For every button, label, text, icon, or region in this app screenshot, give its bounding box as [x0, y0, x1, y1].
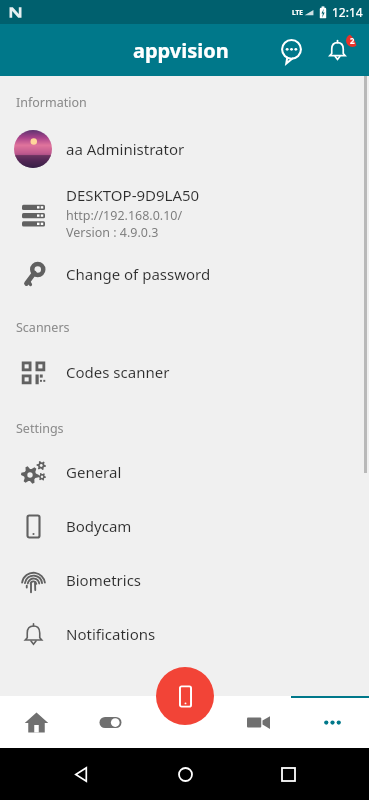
- button[interactable]: Biometrics: [0, 553, 369, 607]
- button[interactable]: Home: [163, 752, 207, 796]
- staticText: Version : 4.9.0.3: [66, 224, 159, 241]
- staticText: Change of password: [66, 264, 211, 284]
- button[interactable]: Bodycam: [0, 499, 369, 553]
- button[interactable]: DESKTOP-9D9LA50: [0, 179, 369, 247]
- button[interactable]: Codes scanner: [0, 344, 369, 400]
- staticText: Codes scanner: [66, 362, 170, 382]
- staticText: 2: [350, 35, 355, 46]
- staticText: aa Administrator: [66, 139, 185, 159]
- button[interactable]: Home: [0, 696, 73, 748]
- button[interactable]: Toggle: [73, 696, 147, 748]
- button[interactable]: aa Administrator: [0, 119, 369, 179]
- staticText: Bodycam: [66, 516, 132, 536]
- button[interactable]: Messages: [271, 30, 311, 70]
- staticText: Information: [16, 94, 87, 111]
- staticText: LTE: [292, 8, 303, 17]
- staticText: Notifications: [66, 624, 156, 644]
- button[interactable]: General: [0, 445, 369, 499]
- button[interactable]: Change of password: [0, 247, 369, 301]
- button[interactable]: Recent apps: [266, 752, 310, 796]
- button[interactable]: Bodycam capture: [156, 667, 214, 725]
- staticText: appvision: [133, 37, 229, 64]
- staticText: Scanners: [16, 319, 70, 336]
- staticText: General: [66, 462, 122, 482]
- staticText: DESKTOP-9D9LA50: [66, 185, 200, 205]
- staticText: Settings: [16, 420, 64, 437]
- button[interactable]: Notifications: [317, 30, 357, 70]
- button[interactable]: Notifications: [0, 607, 369, 661]
- staticText: Biometrics: [66, 570, 142, 590]
- button[interactable]: Back: [59, 752, 103, 796]
- button[interactable]: Video: [221, 696, 295, 748]
- staticText: 12:14: [332, 4, 363, 20]
- button[interactable]: More options: [295, 696, 369, 748]
- staticText: http://192.168.0.10/: [66, 207, 183, 224]
